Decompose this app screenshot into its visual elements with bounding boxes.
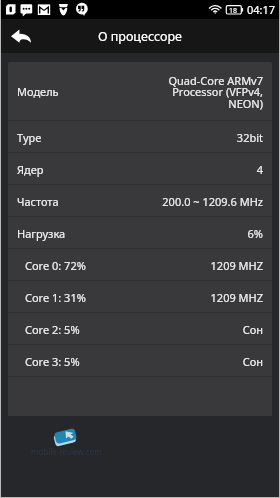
staticText: Core 2: 5% (25, 322, 80, 337)
button[interactable]: Ядер (8, 153, 272, 185)
staticText: 32bit (236, 130, 263, 145)
staticText: 04:17 (247, 2, 276, 17)
staticText: Частота (17, 194, 59, 209)
button[interactable]: Частота (8, 185, 272, 217)
staticText: Core 1: 31% (25, 290, 86, 305)
button[interactable]: Core 0: 72% (8, 249, 272, 281)
button[interactable]: Нагрузка (8, 217, 272, 249)
staticText: Сон (242, 322, 263, 337)
staticText: mobile-review.com (31, 446, 102, 457)
staticText: Нагрузка (17, 226, 66, 241)
staticText: Сон (242, 354, 263, 369)
staticText: Core 3: 5% (25, 354, 80, 369)
staticText: 6% (247, 226, 263, 241)
staticText: 1209 MHZ (210, 258, 263, 273)
button[interactable]: Core 2: 5% (8, 313, 272, 345)
staticText: 200.0 ~ 1209.6 MHz (162, 194, 263, 209)
staticText: Quad-Core ARMv7 Processor (VFPv4, NEON) (168, 73, 263, 111)
staticText: О процессоре (98, 28, 182, 45)
staticText: Type (17, 130, 42, 145)
staticText: Core 0: 72% (25, 258, 86, 273)
button[interactable]: Core 1: 31% (8, 281, 272, 313)
button[interactable]: Type (8, 121, 272, 153)
button[interactable]: Back (0, 19, 42, 53)
staticText: Ядер (17, 162, 44, 177)
staticText: 1209 MHZ (210, 290, 263, 305)
button[interactable]: Модель (8, 62, 272, 121)
button[interactable]: Core 3: 5% (8, 345, 272, 377)
staticText: 18 (229, 6, 238, 16)
staticText: Модель (17, 84, 59, 99)
staticText: 4 (256, 162, 263, 177)
